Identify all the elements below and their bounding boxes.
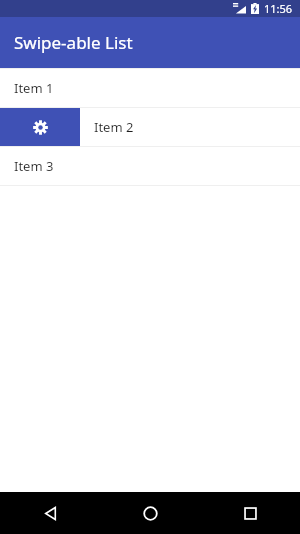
button[interactable]: Home <box>100 492 200 534</box>
staticText: 11:56 <box>264 1 293 16</box>
staticText: Item 1 <box>14 79 54 97</box>
staticText: Swipe-able List <box>14 31 133 54</box>
button[interactable]: Item 1 <box>0 69 300 107</box>
staticText: Item 3 <box>14 157 54 175</box>
button[interactable]: Recents <box>200 492 300 534</box>
button[interactable]: Item 3 <box>0 147 300 185</box>
button[interactable]: Item 2 <box>80 108 300 146</box>
button[interactable]: Settings <box>0 108 80 146</box>
button[interactable]: Back <box>0 492 100 534</box>
staticText: Item 2 <box>94 118 134 136</box>
